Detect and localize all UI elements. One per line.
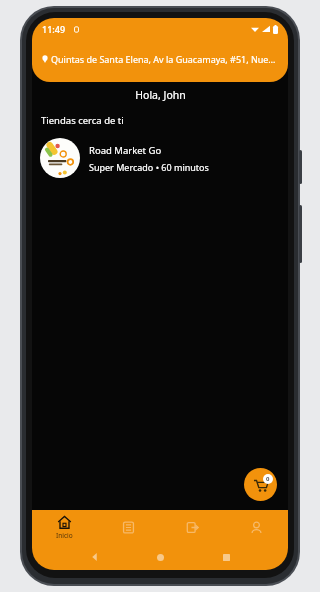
button[interactable]: Perfil (224, 510, 288, 544)
staticText: 0 (266, 475, 270, 483)
staticText: Tiendas cerca de ti (41, 114, 124, 127)
button[interactable]: Inicio (32, 510, 96, 544)
button[interactable]: Quintas de Santa Elena, Av la Guacamaya,… (32, 44, 288, 74)
button[interactable]: Carrito de compras (244, 468, 277, 501)
staticText: Inicio (56, 531, 73, 540)
staticText: Hola, John (135, 88, 186, 102)
button[interactable]: Pedidos (160, 510, 224, 544)
staticText: Quintas de Santa Elena, Av la Guacamaya,… (51, 53, 279, 65)
staticText: Road Market Go (89, 144, 162, 157)
button[interactable]: Road Market Go (32, 135, 288, 181)
staticText: 11:49 (42, 23, 66, 35)
staticText: Super Mercado • 60 minutos (89, 161, 209, 173)
button[interactable]: Catálogo (96, 510, 160, 544)
